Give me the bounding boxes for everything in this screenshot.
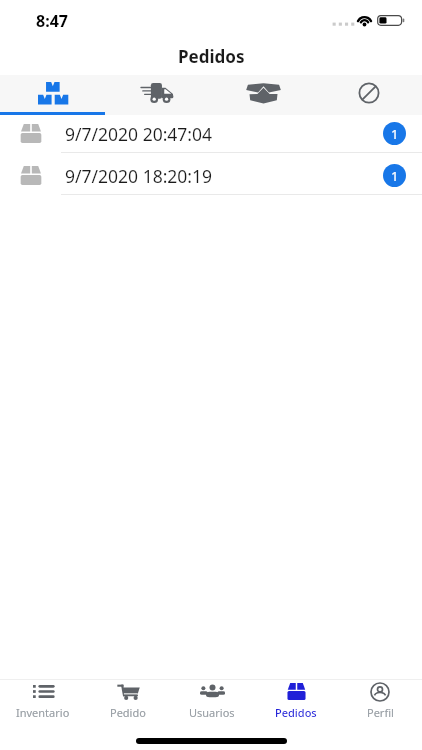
staticText: 1: [391, 125, 399, 143]
staticText: Perfil: [367, 705, 394, 720]
button[interactable]: 9/7/2020 20:47:04: [0, 115, 422, 153]
button[interactable]: 9/7/2020 18:20:19: [0, 153, 422, 195]
staticText: 9/7/2020 18:20:19: [65, 164, 213, 188]
staticText: 8:47: [36, 10, 68, 32]
button[interactable]: Delivered: [210, 75, 316, 115]
staticText: Pedidos: [275, 705, 317, 720]
button[interactable]: Shipping: [105, 75, 210, 115]
staticText: 1: [391, 167, 399, 185]
staticText: Pedidos: [178, 45, 245, 68]
button[interactable]: Pedidos: [254, 680, 338, 729]
button[interactable]: Pedido: [85, 680, 170, 729]
staticText: Inventario: [16, 705, 70, 720]
staticText: 9/7/2020 20:47:04: [65, 122, 213, 146]
button[interactable]: Pending orders: [0, 75, 105, 115]
button[interactable]: Cancelled: [316, 75, 422, 115]
staticText: Pedido: [110, 705, 146, 720]
button[interactable]: Perfil: [338, 680, 422, 729]
button[interactable]: Usuarios: [170, 680, 254, 729]
button[interactable]: Inventario: [0, 680, 85, 729]
staticText: Usuarios: [189, 705, 235, 720]
